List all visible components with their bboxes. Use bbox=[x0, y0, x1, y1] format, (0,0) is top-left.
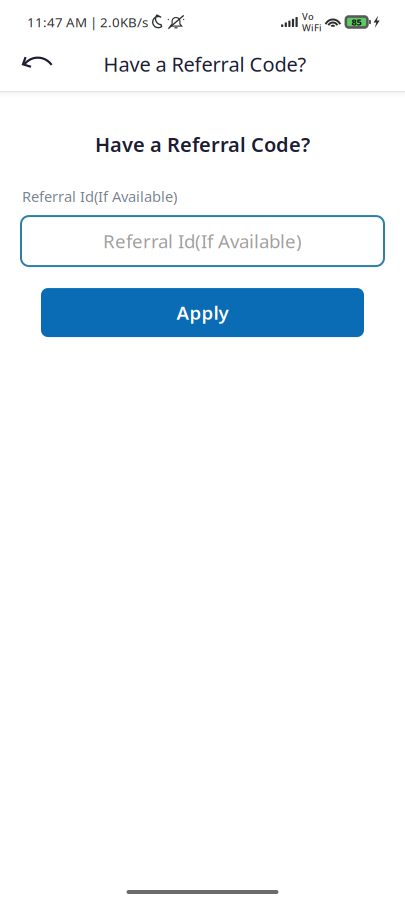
staticText: Apply bbox=[176, 300, 228, 325]
staticText: Vo bbox=[302, 10, 314, 22]
staticText: Referral Id(If Available) bbox=[22, 187, 177, 206]
button[interactable]: Apply bbox=[41, 288, 364, 337]
staticText: Have a Referral Code? bbox=[95, 131, 310, 158]
button[interactable]: Back bbox=[13, 40, 61, 84]
staticText: WiFi bbox=[302, 21, 322, 34]
staticText: 11:47 AM | 2.0KB/s bbox=[27, 13, 148, 31]
staticText: Have a Referral Code? bbox=[103, 51, 306, 77]
staticText: 85 bbox=[352, 16, 362, 28]
staticText: Referral Id(If Available) bbox=[103, 229, 302, 253]
